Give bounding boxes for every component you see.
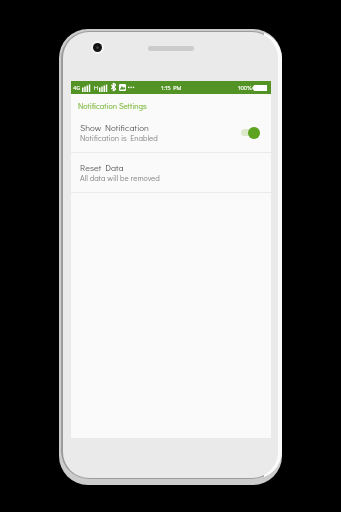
staticText: Reset Data: [80, 162, 124, 174]
staticText: Show Notification: [80, 122, 149, 134]
button[interactable]: [71, 153, 271, 192]
staticText: All data will be removed: [80, 173, 160, 183]
staticText: 1:15 PM: [161, 84, 182, 92]
button[interactable]: Toggle show notification: [240, 126, 260, 139]
staticText: 100%: [238, 84, 252, 92]
staticText: Notification Settings: [78, 101, 147, 111]
button[interactable]: [71, 112, 271, 152]
staticText: Notification is Enabled: [80, 133, 158, 143]
staticText: 4G: [73, 84, 81, 92]
staticText: H: [94, 84, 99, 92]
